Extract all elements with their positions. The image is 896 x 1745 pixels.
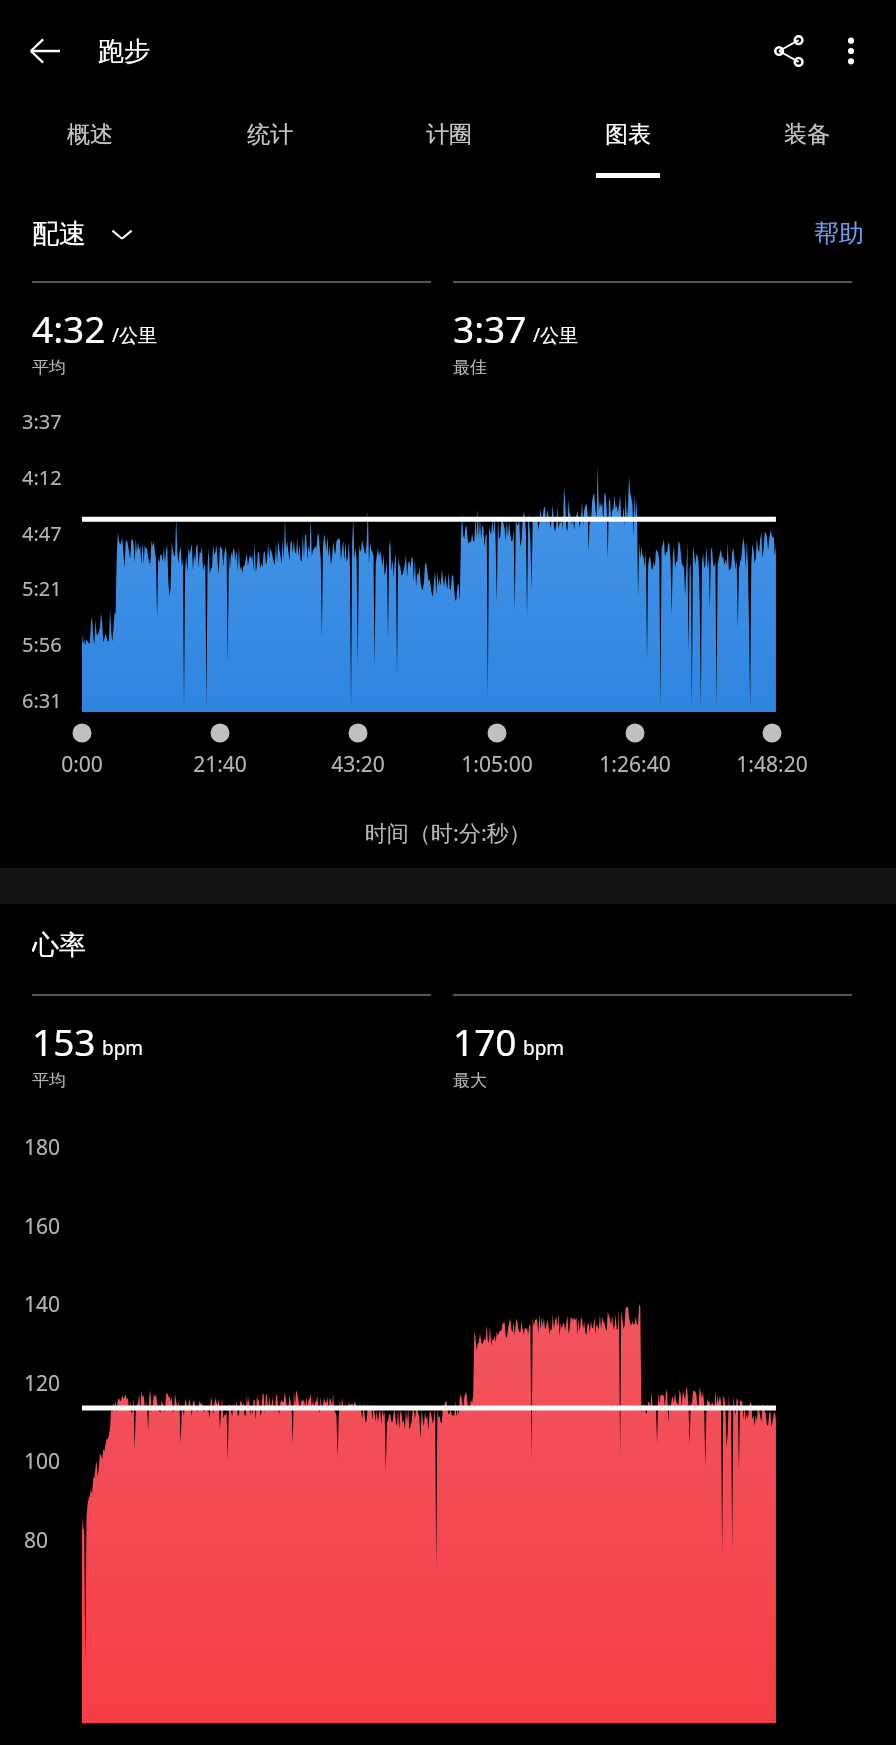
staticText: 最大 bbox=[453, 1070, 487, 1091]
staticText: 4:47 bbox=[22, 520, 62, 547]
button[interactable]: 心率 bbox=[32, 924, 86, 966]
staticText: /公里 bbox=[112, 322, 158, 348]
staticText: 5:56 bbox=[22, 631, 62, 658]
button[interactable]: 统计 bbox=[180, 102, 359, 194]
staticText: 装备 bbox=[784, 120, 830, 149]
staticText: 180 bbox=[24, 1133, 61, 1162]
staticText: 图表 bbox=[605, 120, 651, 149]
staticText: 1:05:00 bbox=[461, 750, 533, 779]
staticText: 心率 bbox=[32, 928, 86, 962]
staticText: 0:00 bbox=[61, 750, 103, 779]
staticText: 170 bbox=[453, 1016, 517, 1066]
staticText: 80 bbox=[24, 1526, 49, 1555]
staticText: 4:32 bbox=[32, 303, 106, 353]
button[interactable]: 配速 bbox=[30, 213, 136, 255]
button[interactable]: Share bbox=[760, 22, 818, 80]
staticText: 跑步 bbox=[98, 35, 150, 68]
staticText: 计圈 bbox=[426, 120, 472, 149]
staticText: 1:26:40 bbox=[599, 750, 671, 779]
staticText: 平均 bbox=[32, 357, 66, 378]
staticText: bpm bbox=[523, 1035, 565, 1061]
staticText: 配速 bbox=[32, 217, 86, 251]
staticText: 6:31 bbox=[22, 687, 62, 714]
staticText: 5:21 bbox=[22, 575, 62, 602]
staticText: 1:48:20 bbox=[736, 750, 808, 779]
staticText: 时间（时:分:秒） bbox=[365, 817, 531, 847]
button[interactable]: 概述 bbox=[0, 102, 180, 194]
staticText: /公里 bbox=[533, 322, 579, 348]
staticText: bpm bbox=[102, 1035, 144, 1061]
button[interactable]: 图表 bbox=[538, 102, 717, 194]
staticText: 120 bbox=[24, 1369, 61, 1398]
staticText: 4:12 bbox=[22, 464, 62, 491]
staticText: 160 bbox=[24, 1212, 61, 1241]
staticText: 3:37 bbox=[22, 408, 62, 435]
staticText: 最佳 bbox=[453, 357, 487, 378]
staticText: 140 bbox=[24, 1290, 61, 1319]
button[interactable]: Back bbox=[16, 22, 74, 80]
staticText: 平均 bbox=[32, 1070, 66, 1091]
button[interactable]: 装备 bbox=[717, 102, 896, 194]
staticText: 153 bbox=[32, 1016, 96, 1066]
button[interactable]: More options bbox=[822, 22, 880, 80]
button[interactable]: 帮助 bbox=[808, 212, 870, 255]
button[interactable]: 计圈 bbox=[359, 102, 538, 194]
staticText: 21:40 bbox=[193, 750, 247, 779]
staticText: 帮助 bbox=[814, 218, 864, 249]
staticText: 100 bbox=[24, 1447, 61, 1476]
staticText: 概述 bbox=[67, 120, 113, 149]
staticText: 统计 bbox=[247, 120, 293, 149]
staticText: 3:37 bbox=[453, 303, 527, 353]
staticText: 43:20 bbox=[331, 750, 385, 779]
